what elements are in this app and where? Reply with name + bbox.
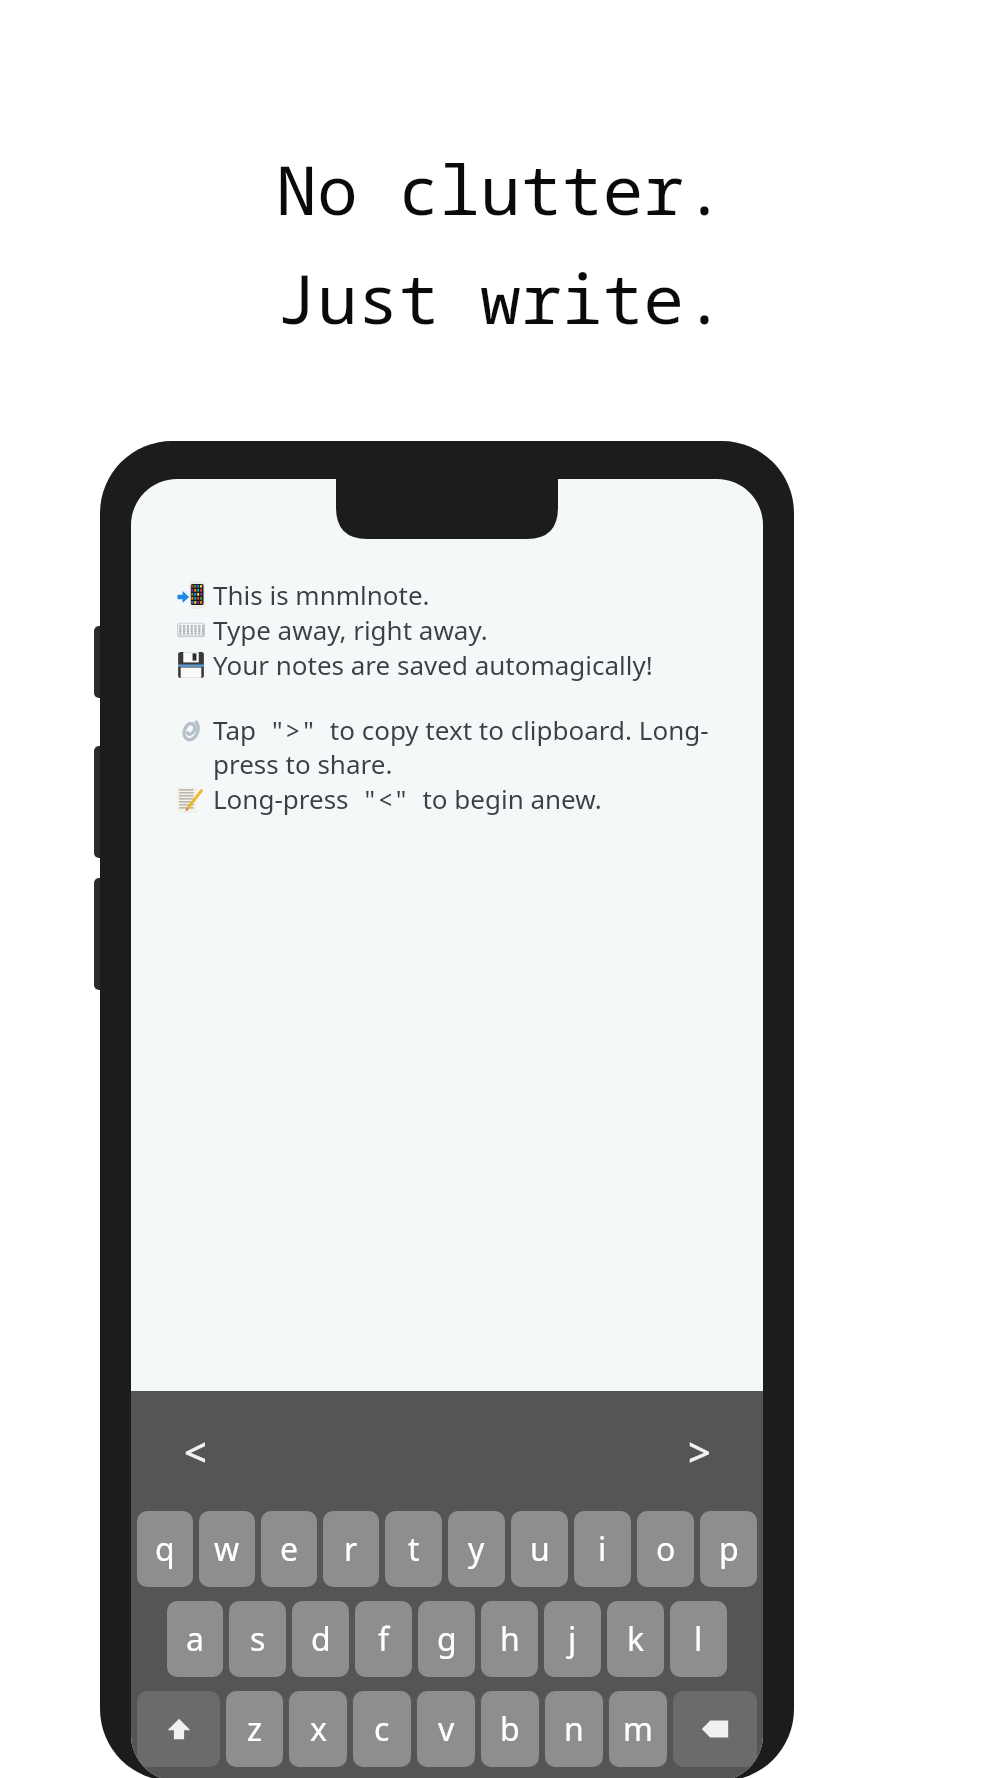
staticText: Long-press "<" to begin anew. <box>213 781 602 816</box>
staticText: r <box>344 1527 358 1571</box>
staticText: No clutter. <box>276 142 725 235</box>
staticText: d <box>311 1617 331 1661</box>
button[interactable]: Copy to clipboard <box>661 1413 737 1489</box>
button[interactable]: v <box>417 1691 475 1767</box>
staticText: z <box>247 1707 263 1751</box>
button[interactable]: f <box>355 1601 412 1677</box>
button[interactable]: e <box>261 1511 317 1587</box>
staticText: < <box>184 1424 207 1478</box>
button[interactable]: y <box>448 1511 505 1587</box>
staticText: e <box>280 1527 299 1571</box>
staticText: i <box>598 1527 607 1571</box>
button[interactable]: u <box>511 1511 568 1587</box>
button[interactable]: g <box>418 1601 475 1677</box>
button[interactable]: r <box>323 1511 379 1587</box>
button[interactable]: z <box>226 1691 283 1767</box>
button[interactable]: p <box>700 1511 757 1587</box>
staticText: a <box>186 1617 204 1661</box>
button[interactable]: Backspace <box>673 1691 757 1767</box>
staticText: g <box>437 1617 457 1661</box>
staticText: t <box>408 1527 420 1571</box>
staticText: c <box>374 1707 390 1751</box>
button[interactable]: m <box>609 1691 667 1767</box>
staticText: Just write. <box>276 251 725 344</box>
staticText: q <box>155 1527 175 1571</box>
button[interactable]: b <box>481 1691 539 1767</box>
staticText: n <box>564 1707 584 1751</box>
button[interactable]: s <box>229 1601 286 1677</box>
staticText: x <box>310 1707 327 1751</box>
staticText: Your notes are saved automagically! <box>213 647 653 682</box>
staticText: m <box>623 1707 653 1751</box>
staticText: f <box>378 1617 390 1661</box>
button[interactable]: n <box>545 1691 603 1767</box>
staticText: > <box>688 1424 711 1478</box>
staticText: Type away, right away. <box>213 612 488 647</box>
staticText: k <box>627 1617 645 1661</box>
staticText: l <box>694 1617 703 1661</box>
button[interactable]: q <box>137 1511 193 1587</box>
button[interactable]: t <box>385 1511 442 1587</box>
button[interactable]: k <box>607 1601 664 1677</box>
staticText: w <box>214 1527 240 1571</box>
staticText: u <box>530 1527 550 1571</box>
button[interactable]: l <box>670 1601 727 1677</box>
button[interactable]: j <box>544 1601 601 1677</box>
staticText: p <box>719 1527 739 1571</box>
staticText: s <box>250 1617 266 1661</box>
button[interactable]: h <box>481 1601 538 1677</box>
button[interactable]: x <box>289 1691 347 1767</box>
button[interactable]: c <box>353 1691 411 1767</box>
staticText: v <box>438 1707 455 1751</box>
button[interactable]: Shift <box>137 1691 220 1767</box>
staticText: j <box>568 1617 577 1661</box>
staticText: This is mnmlnote. <box>213 577 430 612</box>
button[interactable]: w <box>199 1511 255 1587</box>
staticText: h <box>500 1617 520 1661</box>
button[interactable]: a <box>167 1601 223 1677</box>
button[interactable]: o <box>637 1511 694 1587</box>
button[interactable]: i <box>574 1511 631 1587</box>
staticText: Tap ">" to copy text to clipboard. Long-… <box>213 712 739 781</box>
button[interactable]: d <box>292 1601 349 1677</box>
staticText: o <box>656 1527 676 1571</box>
button[interactable]: New note <box>157 1413 233 1489</box>
staticText: y <box>468 1527 485 1571</box>
staticText: b <box>500 1707 520 1751</box>
